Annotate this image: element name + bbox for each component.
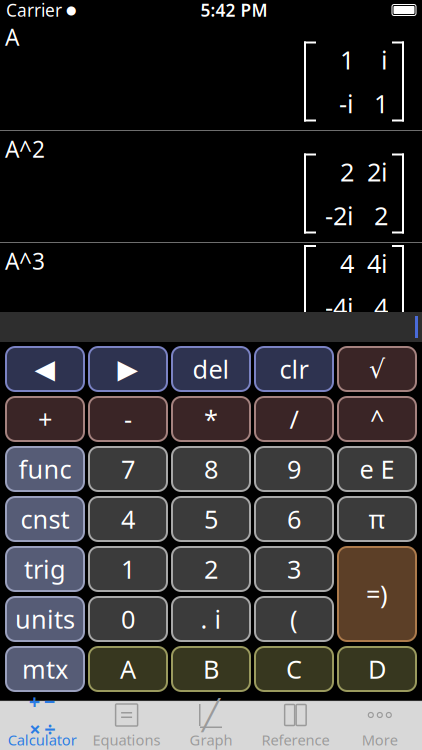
staticText: 0 [121,602,135,636]
staticText: ( [290,602,298,636]
staticText: 5 [204,502,218,536]
button[interactable]: D [338,647,416,691]
staticText: -i [339,86,354,120]
staticText: 2 [204,552,218,586]
button[interactable]: ^ [338,397,416,441]
button[interactable]: Move cursor right [89,347,167,391]
staticText: 4 [340,246,354,280]
staticText: 1 [340,43,354,76]
staticText: 4i [367,246,388,280]
staticText: 5:42 PM [200,0,267,21]
staticText: + [38,402,52,436]
staticText: 9 [287,452,301,486]
staticText: D [368,652,386,686]
staticText: func [18,452,71,486]
staticText: Graph [189,730,232,749]
button[interactable]: + [6,397,84,441]
button[interactable]: 5 [172,497,250,541]
button[interactable]: C [255,647,333,691]
staticText: A [120,652,136,686]
staticText: 1 [121,552,135,586]
button[interactable]: 7 [89,447,167,491]
staticText: cnst [20,502,69,536]
button[interactable]: B [172,647,250,691]
staticText: 6 [287,502,301,536]
button[interactable]: - [89,397,167,441]
staticText: del [192,352,229,386]
staticText: ÷ [44,715,55,742]
staticText: ╱ [202,698,220,732]
button[interactable]: 8 [172,447,250,491]
button[interactable]: units [6,597,84,641]
button[interactable]: ( [255,597,333,641]
button[interactable]: 2 [172,547,250,591]
button[interactable]: 1 [89,547,167,591]
staticText: Equations [93,730,161,749]
staticText: 7 [121,452,135,486]
staticText: More [362,730,398,749]
button[interactable]: 4 [89,497,167,541]
staticText: 8 [204,452,218,486]
button[interactable]: del [172,347,250,391]
staticText: + [29,688,40,715]
button[interactable]: + [0,701,84,750]
button[interactable]: √ [338,347,416,391]
staticText: mtx [22,652,68,686]
button[interactable]: * [172,397,250,441]
staticText: Carrier [6,0,62,21]
button[interactable]: / [255,397,333,441]
button[interactable]: =) [338,547,416,641]
staticText: 3 [287,552,301,586]
button[interactable]: func [6,447,84,491]
staticText: Reference [261,730,329,749]
button[interactable]: Reference [253,701,338,750]
button[interactable]: . i [172,597,250,641]
staticText: ◀ [34,354,55,384]
staticText: -4i [325,290,354,324]
button[interactable]: 6 [255,497,333,541]
button[interactable]: cnst [6,497,84,541]
button[interactable]: mtx [6,647,84,691]
staticText: 2 [340,155,354,188]
staticText: ▶ [117,354,138,384]
staticText: - [124,402,132,436]
staticText: Calculator [8,730,77,749]
staticText: clr [279,352,308,386]
staticText: =) [366,577,388,611]
button[interactable]: Move cursor left [6,347,84,391]
button[interactable]: More [338,701,422,750]
staticText: 4 [374,290,388,324]
staticText: ^ [370,402,384,436]
staticText: ● [66,3,76,17]
button[interactable]: clr [255,347,333,391]
staticText: 2i [367,155,388,188]
button[interactable]: trig [6,547,84,591]
staticText: × [29,715,40,742]
staticText: -2i [325,198,354,232]
staticText: / [289,402,298,436]
staticText: π [368,502,385,536]
button[interactable]: ╱ [169,701,253,750]
button[interactable]: π [338,497,416,541]
staticText: B [203,652,219,686]
button[interactable]: A [89,647,167,691]
staticText: A [5,22,19,52]
staticText: − [44,688,56,715]
button[interactable]: 3 [255,547,333,591]
button[interactable]: 0 [89,597,167,641]
staticText: A^2 [5,134,45,164]
button[interactable]: e E [338,447,416,491]
staticText: . i [200,602,221,636]
staticText: i [381,43,388,76]
staticText: * [204,402,218,436]
staticText: A^3 [5,246,45,276]
button[interactable]: 9 [255,447,333,491]
staticText: trig [24,552,66,586]
staticText: 2 [374,198,388,232]
staticText: C [286,652,302,686]
staticText: units [15,602,75,636]
staticText: e E [359,452,394,486]
staticText: √ [369,355,385,383]
button[interactable]: Equations [84,701,169,750]
staticText: 4 [121,502,135,536]
